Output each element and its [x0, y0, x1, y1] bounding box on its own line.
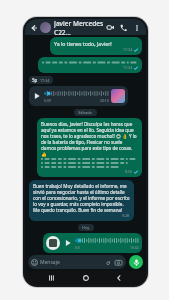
button[interactable]: Ya lo tienes todo, Javier!	[54, 40, 138, 52]
button[interactable]: Play voice message	[46, 236, 139, 250]
staticText: 17:34	[123, 47, 133, 52]
staticText: 5:39	[44, 98, 51, 103]
staticText: Hoy	[82, 225, 90, 230]
staticText: Buen trabajo! Muy detallado el informe, …	[33, 183, 130, 213]
staticText: 17:34	[40, 78, 50, 83]
staticText: Sábado	[78, 110, 93, 115]
staticText: Mensaje	[40, 259, 103, 266]
button[interactable]: Video call	[104, 21, 117, 34]
staticText: 9:28	[122, 213, 130, 218]
staticText: 5p	[32, 77, 38, 83]
button[interactable]	[40, 22, 51, 33]
button[interactable]: Attach	[103, 258, 112, 267]
button[interactable]: Voice call	[117, 21, 130, 34]
button[interactable]: Buenos días, Javier! Disculpa las horas …	[41, 121, 138, 174]
staticText: 20:10	[100, 98, 109, 103]
staticText: Buenos días, Javier! Disculpa las horas …	[41, 121, 138, 157]
button[interactable]: More options	[130, 21, 143, 34]
button[interactable]: Camera	[114, 258, 123, 267]
button[interactable]: Play voice message	[32, 89, 125, 103]
button[interactable]: Back	[28, 22, 39, 33]
button[interactable]: Recents	[46, 272, 58, 284]
button[interactable]: Record voice message	[129, 255, 143, 269]
staticText: 10:42	[130, 245, 139, 250]
button[interactable]: Mensaje	[31, 255, 123, 269]
staticText: 8:56	[125, 169, 133, 174]
staticText: Ya lo tienes todo, Javier!	[54, 40, 112, 47]
staticText: 17:34	[123, 65, 133, 70]
button[interactable]: Play voice message	[63, 238, 73, 248]
button[interactable]: 17:34	[42, 60, 138, 70]
button[interactable]: Buen trabajo! Muy detallado el informe, …	[33, 183, 130, 218]
staticText: 0:0	[75, 245, 80, 250]
button[interactable]: Play voice message	[32, 91, 42, 101]
button[interactable]: 5p	[32, 77, 50, 83]
button[interactable]: Home	[80, 272, 92, 284]
button[interactable]: Javier Mercedes C22…	[54, 19, 104, 35]
button[interactable]: Back	[113, 272, 125, 284]
